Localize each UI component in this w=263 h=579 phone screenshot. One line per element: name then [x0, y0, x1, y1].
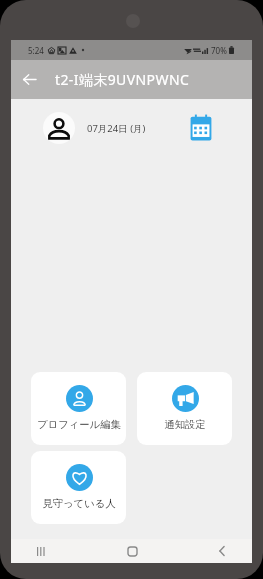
button[interactable]: Recents	[29, 539, 53, 563]
button[interactable]: Calendar	[187, 114, 215, 142]
button[interactable]: Back	[11, 60, 48, 99]
button[interactable]: 通知設定	[137, 372, 232, 445]
staticText: 07月24日 (月)	[87, 122, 146, 135]
staticText: 5:24	[28, 45, 44, 56]
staticText: 70%	[211, 45, 227, 56]
staticText: 通知設定	[164, 418, 206, 431]
staticText: t2-I端末9UVNPWNC	[55, 70, 190, 89]
button[interactable]: Back	[210, 539, 234, 563]
staticText: プロフィール編集	[37, 418, 121, 431]
button[interactable]: 見守っている人	[31, 451, 126, 524]
staticText: 見守っている人	[42, 497, 116, 510]
button[interactable]: プロフィール編集	[31, 372, 126, 445]
button[interactable]: Home	[120, 539, 144, 563]
